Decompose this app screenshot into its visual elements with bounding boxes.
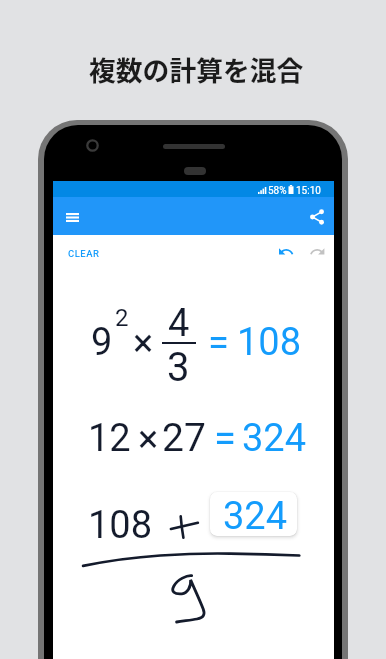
- button[interactable]: CLEAR: [68, 248, 100, 259]
- button[interactable]: Redo: [305, 242, 326, 263]
- staticText: ×: [133, 321, 154, 366]
- staticText: 15:10: [296, 185, 321, 197]
- button[interactable]: Share: [305, 205, 328, 228]
- staticText: 27: [162, 415, 206, 461]
- staticText: =: [208, 321, 229, 366]
- staticText: 9: [91, 320, 113, 365]
- button[interactable]: Menu: [57, 202, 87, 232]
- staticText: 12: [88, 416, 131, 461]
- staticText: =: [214, 415, 236, 462]
- staticText: 58%: [268, 185, 287, 197]
- staticText: CLEAR: [68, 248, 100, 259]
- staticText: 4: [168, 301, 190, 346]
- staticText: 324: [223, 494, 288, 536]
- staticText: 324: [242, 416, 307, 461]
- button[interactable]: 324: [210, 492, 297, 536]
- staticText: ×: [138, 417, 159, 462]
- staticText: 3: [167, 344, 190, 391]
- staticText: 2: [115, 304, 129, 332]
- button[interactable]: Undo: [275, 242, 296, 263]
- staticText: 複数の計算を混合: [89, 50, 304, 89]
- staticText: 108: [237, 320, 302, 365]
- staticText: 108: [88, 503, 153, 548]
